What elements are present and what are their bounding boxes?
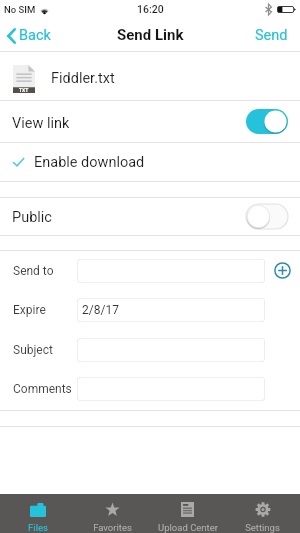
staticText: Upload Center — [158, 522, 218, 533]
button[interactable]: Send — [246, 21, 300, 50]
button[interactable]: TXT — [0, 52, 300, 100]
staticText: Send — [255, 27, 288, 44]
staticText: Send to — [13, 264, 54, 278]
staticText: Settings — [245, 522, 280, 533]
staticText: View link — [12, 115, 70, 132]
button[interactable]: Upload Center — [150, 494, 225, 533]
button[interactable]: Toggle off — [246, 204, 288, 229]
staticText: Enable download — [34, 154, 145, 171]
button[interactable]: Add recipient — [265, 251, 300, 290]
staticText: TXT — [19, 87, 29, 93]
staticText: Comments — [13, 382, 72, 396]
button[interactable]: Public — [0, 198, 300, 235]
button[interactable]: Enable download — [0, 143, 300, 181]
staticText: 16:20 — [137, 3, 164, 15]
button[interactable]: View link — [0, 101, 300, 142]
button[interactable]: Back — [0, 22, 59, 49]
staticText: 2/8/17 — [82, 303, 119, 317]
button[interactable]: Settings — [225, 494, 300, 533]
button[interactable]: Files — [0, 494, 75, 533]
button[interactable]: 2/8/17 — [77, 298, 265, 322]
staticText: Fiddler.txt — [51, 70, 115, 87]
staticText: Files — [28, 522, 48, 533]
staticText: No SIM — [4, 4, 36, 15]
staticText: Send Link — [117, 26, 184, 44]
staticText: Public — [12, 209, 52, 226]
button[interactable] — [77, 377, 265, 401]
button[interactable]: Favorites — [75, 494, 150, 533]
staticText: Favorites — [93, 522, 132, 533]
button[interactable]: Toggle on — [246, 109, 288, 134]
button[interactable] — [77, 259, 265, 283]
staticText: Subject — [13, 343, 53, 357]
staticText: Back — [19, 27, 51, 44]
button[interactable] — [77, 338, 265, 362]
staticText: Expire — [13, 303, 46, 317]
